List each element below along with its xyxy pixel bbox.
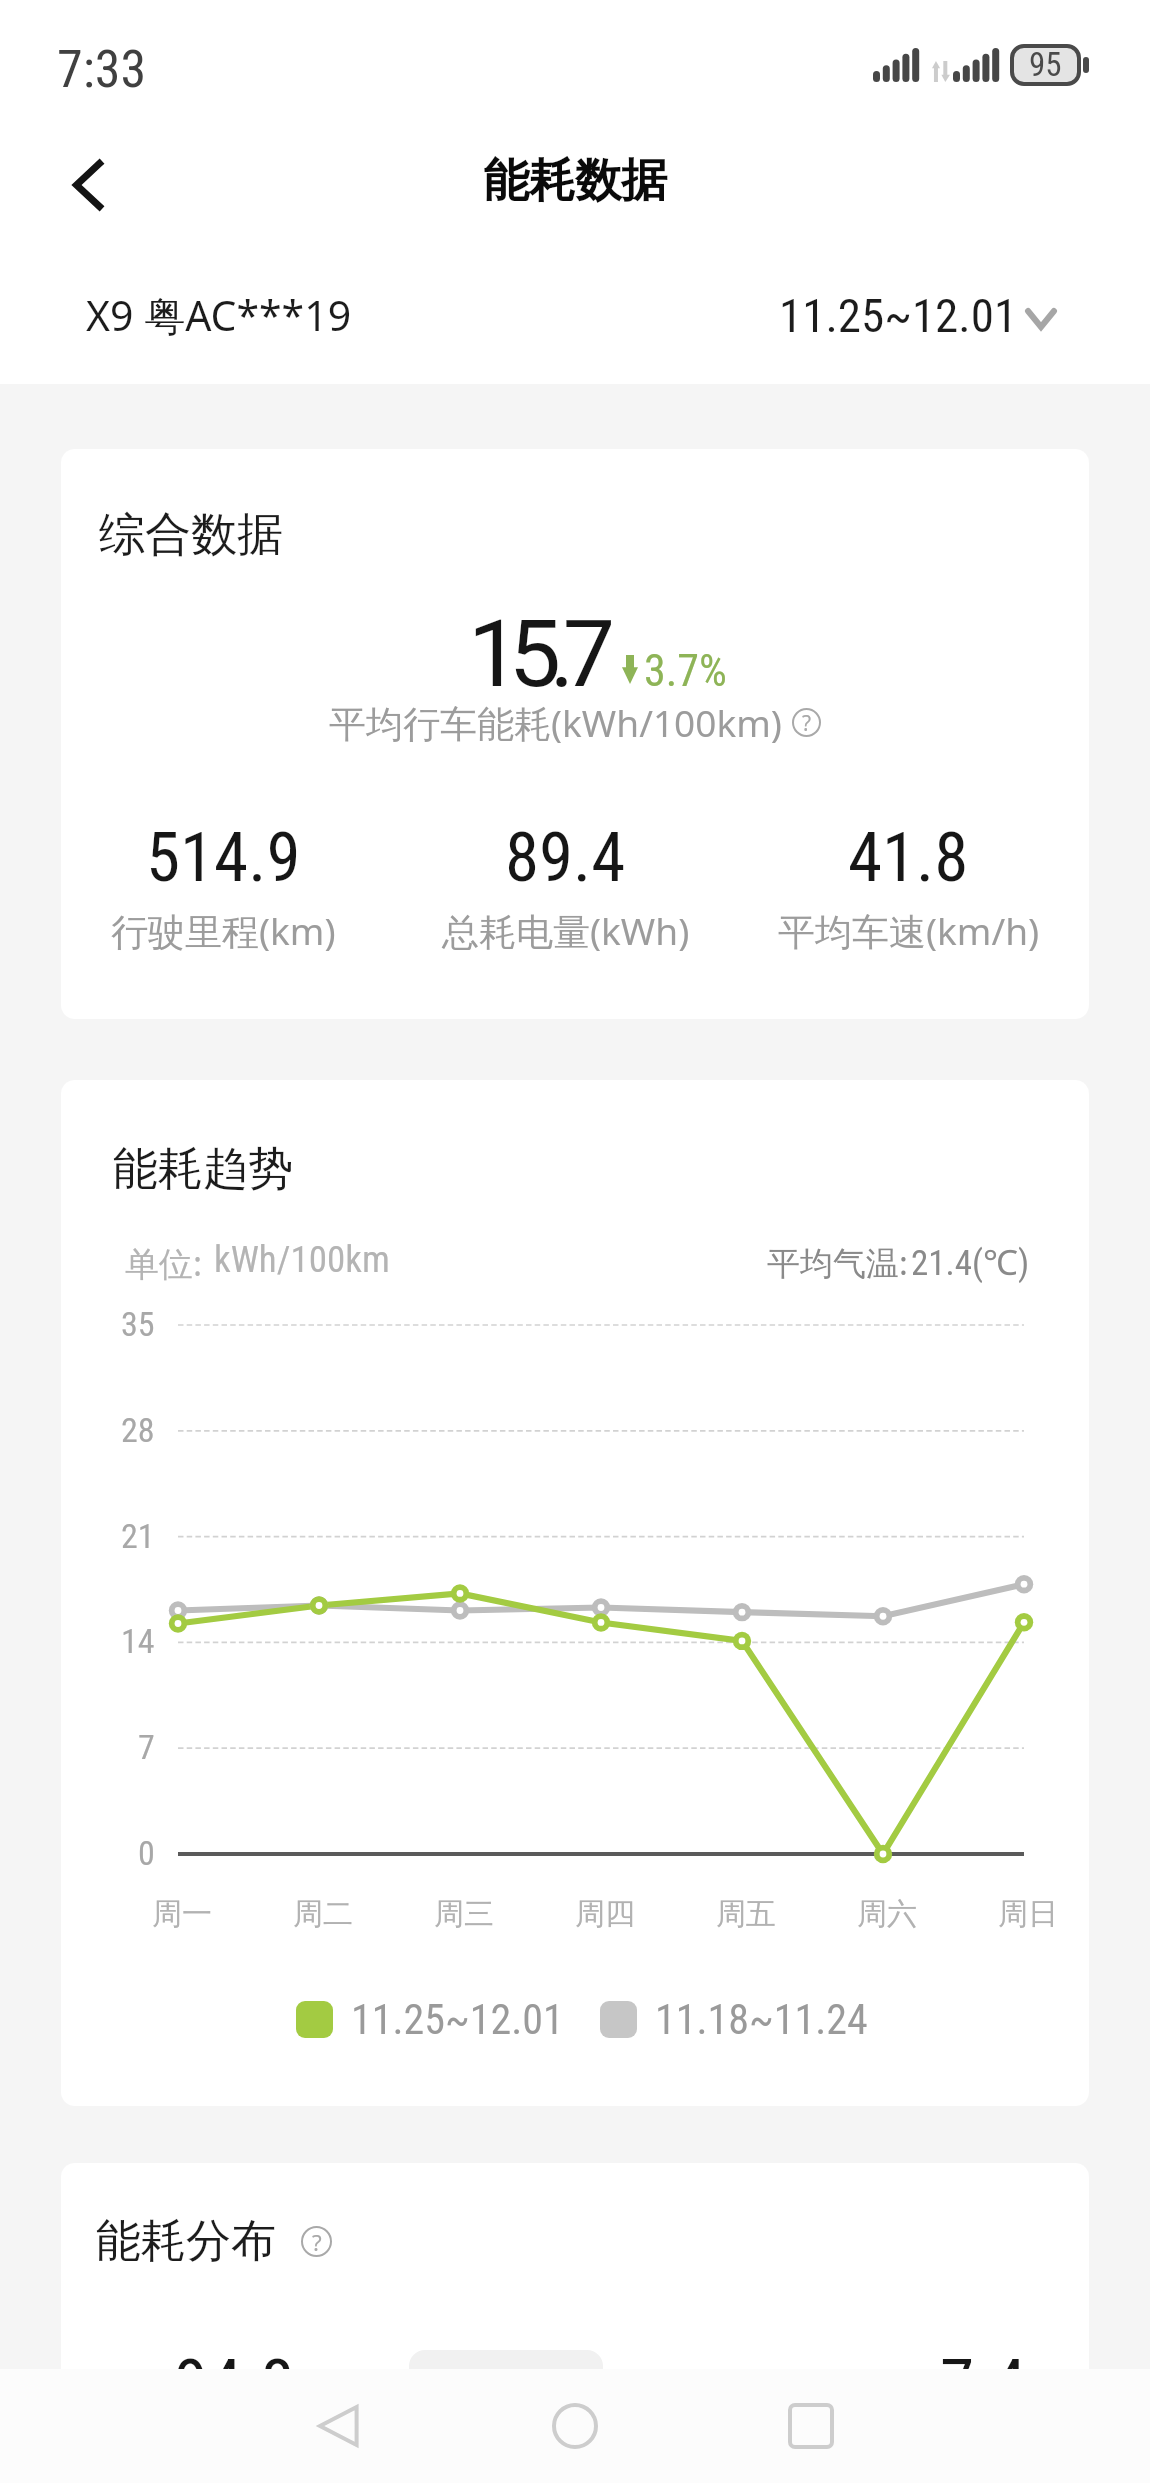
button[interactable]: Back bbox=[31, 128, 145, 242]
staticText: 15.7 bbox=[468, 600, 604, 709]
staticText: 94.8 bbox=[174, 2344, 295, 2425]
staticText: 周六 bbox=[857, 1895, 917, 1933]
staticText: 0 bbox=[138, 1833, 155, 1873]
button[interactable]: Recents bbox=[751, 2369, 871, 2483]
staticText: 35 bbox=[121, 1304, 155, 1344]
staticText: 7:33 bbox=[57, 39, 147, 100]
staticText: 平均行车能耗(kWh/100km) bbox=[329, 697, 782, 748]
button[interactable]: Home bbox=[515, 2369, 635, 2483]
staticText: 11.18~11.24 bbox=[655, 1995, 868, 2044]
staticText: 21.4(℃) bbox=[911, 1238, 1030, 1286]
button[interactable]: 11.18~11.24 bbox=[600, 1995, 868, 2044]
staticText: 11.25~12.01 bbox=[779, 288, 1018, 343]
button[interactable]: Change date range bbox=[1014, 292, 1068, 346]
staticText: 单位: bbox=[125, 1240, 203, 1286]
staticText: 平均车速(km/h) bbox=[778, 905, 1040, 956]
staticText: 综合数据 bbox=[99, 506, 283, 564]
staticText: 89.4 bbox=[505, 817, 626, 898]
staticText: 7 bbox=[138, 1727, 155, 1767]
staticText: 能耗数据 bbox=[483, 152, 667, 210]
staticText: 行驶里程(km) bbox=[111, 905, 336, 956]
staticText: 3.7% bbox=[644, 645, 727, 697]
staticText: 14 bbox=[121, 1621, 155, 1661]
staticText: 周三 bbox=[434, 1895, 494, 1933]
staticText: ? bbox=[802, 709, 812, 737]
staticText: X9 粤AC***19 bbox=[86, 287, 352, 343]
staticText: 周一 bbox=[152, 1895, 212, 1933]
staticText: 21 bbox=[121, 1516, 155, 1556]
staticText: 周五 bbox=[716, 1895, 776, 1933]
staticText: 514.9 bbox=[146, 817, 301, 898]
button[interactable]: Back bbox=[279, 2369, 399, 2483]
staticText: 周二 bbox=[293, 1895, 353, 1933]
staticText: 能耗分布 bbox=[96, 2213, 276, 2270]
staticText: 11.25~12.01 bbox=[351, 1995, 564, 2044]
staticText: 95 bbox=[1029, 45, 1062, 83]
staticText: 28 bbox=[121, 1410, 155, 1450]
staticText: 能耗趋势 bbox=[113, 1141, 293, 1198]
button[interactable]: 11.25~12.01 bbox=[296, 1995, 564, 2044]
staticText: kWh/100km bbox=[214, 1238, 390, 1281]
staticText: ? bbox=[312, 2227, 322, 2257]
staticText: 周日 bbox=[998, 1895, 1058, 1933]
staticText: 周四 bbox=[575, 1895, 635, 1933]
staticText: 总耗电量(kWh) bbox=[442, 905, 690, 956]
staticText: 7.4 bbox=[940, 2344, 1027, 2425]
staticText: 41.8 bbox=[848, 817, 969, 898]
staticText: 平均气温: bbox=[767, 1240, 908, 1285]
